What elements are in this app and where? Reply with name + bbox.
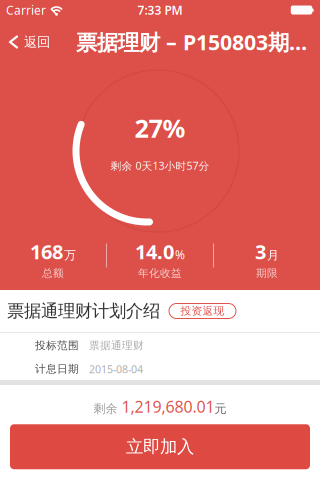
staticText: 27% xyxy=(134,111,185,145)
staticText: 1,219,680.01 xyxy=(121,396,214,417)
staticText: 万 xyxy=(64,248,76,262)
staticText: 168 xyxy=(30,238,63,265)
staticText: 返回 xyxy=(24,34,50,50)
button[interactable]: 立即加入 xyxy=(10,424,310,469)
staticText: 投标范围 xyxy=(35,339,79,352)
staticText: 立即加入 xyxy=(126,436,194,457)
staticText: 2015-08-04 xyxy=(89,362,143,376)
staticText: 期限 xyxy=(256,267,278,280)
staticText: 年化收益 xyxy=(138,267,182,280)
staticText: 投资返现 xyxy=(180,304,224,317)
staticText: 7:33 PM xyxy=(137,2,182,18)
staticText: Carrier xyxy=(6,2,46,18)
staticText: 计息日期 xyxy=(35,362,79,375)
staticText: 月 xyxy=(267,248,279,262)
staticText: 票据理财 – P150803期… xyxy=(76,28,307,56)
button[interactable]: 返回 xyxy=(0,34,50,50)
staticText: 总额 xyxy=(42,267,64,280)
staticText: 剩余 xyxy=(93,401,121,416)
staticText: 票据通理财 xyxy=(89,339,144,352)
staticText: 票据通理财计划介绍 xyxy=(7,300,160,322)
staticText: 14.0 xyxy=(135,238,174,265)
staticText: % xyxy=(175,247,185,262)
staticText: 剩余 0天13小时57分 xyxy=(110,159,209,173)
staticText: 元 xyxy=(214,401,226,416)
staticText: 3 xyxy=(255,238,266,265)
